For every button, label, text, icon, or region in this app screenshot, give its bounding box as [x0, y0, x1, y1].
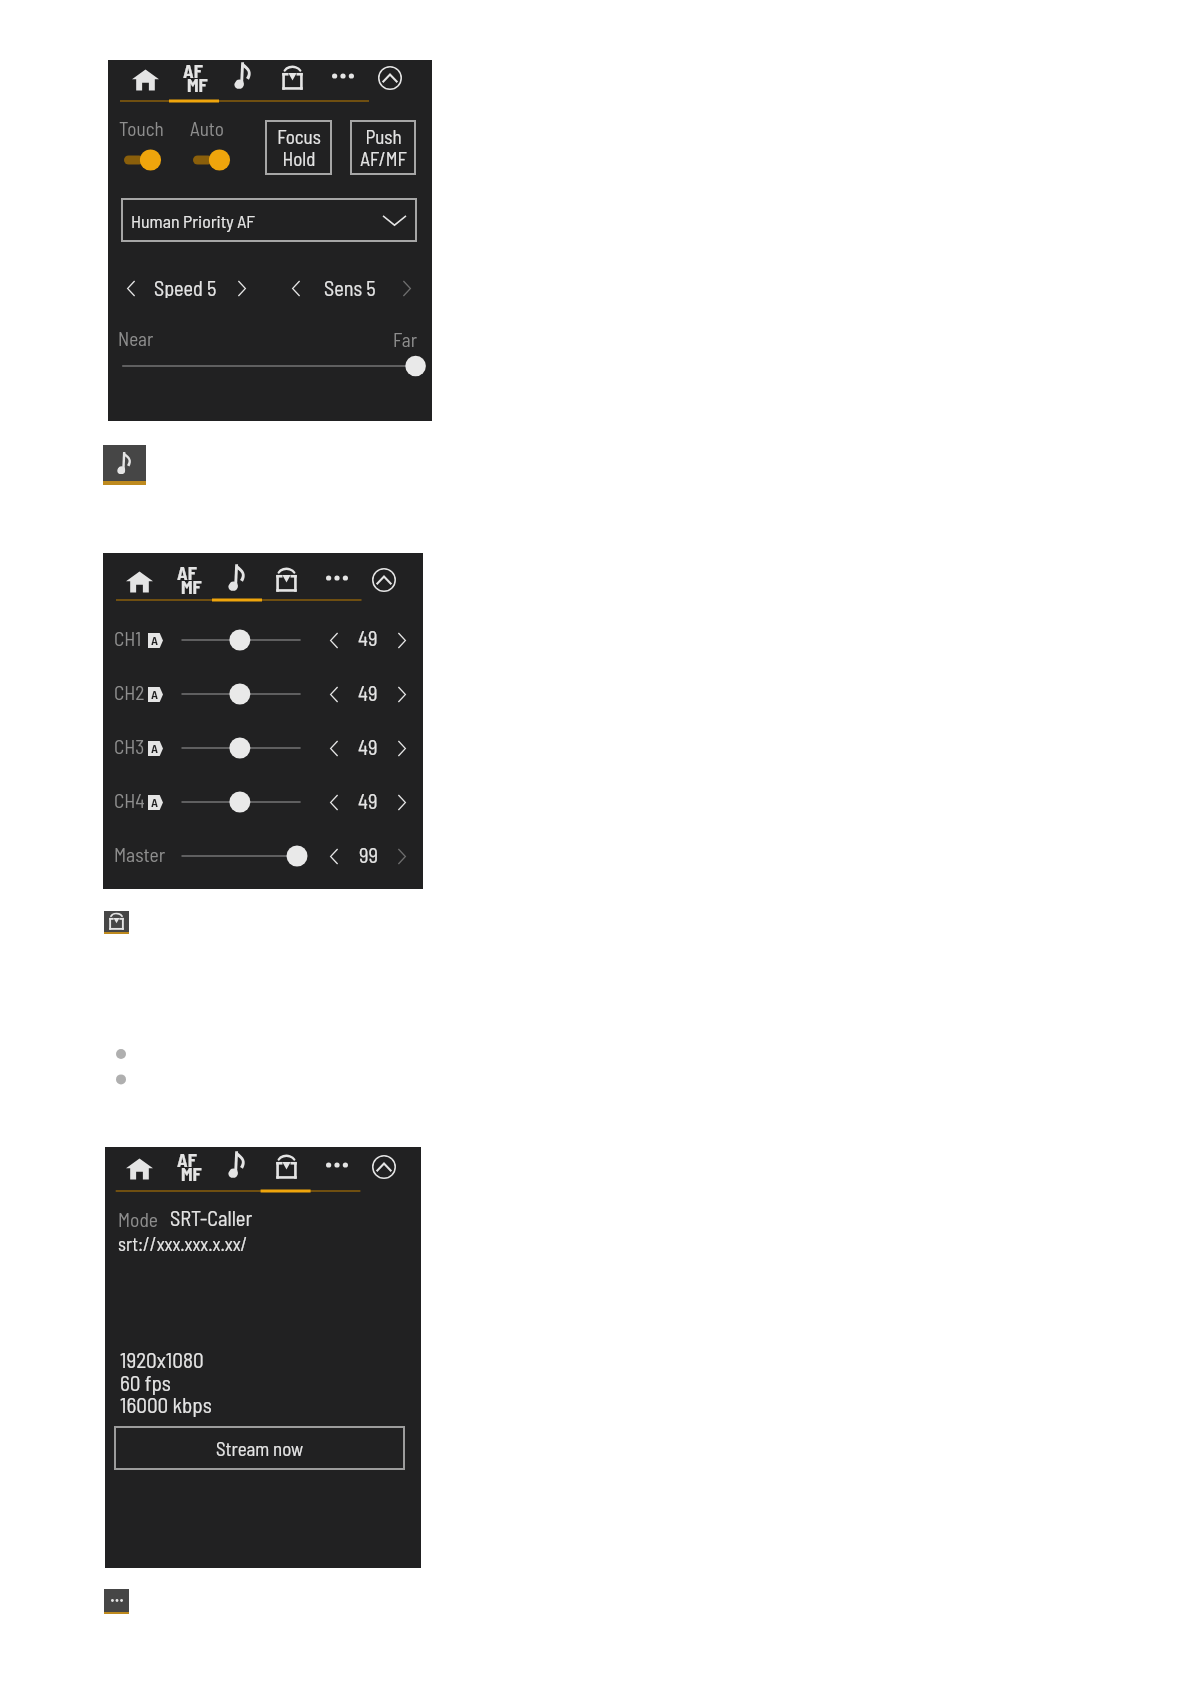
staticText: CH1 [114, 626, 142, 650]
button[interactable]: Audio [221, 58, 265, 92]
button[interactable]: Streaming [264, 1150, 308, 1184]
staticText: Touch [119, 117, 164, 140]
button[interactable]: Audio tab [103, 445, 146, 481]
button[interactable]: Collapse [362, 1150, 406, 1184]
staticText: Far [393, 328, 417, 351]
staticText: A [151, 687, 159, 702]
button[interactable]: More [315, 1148, 359, 1182]
staticText: srt://xxx.xxx.x.xx/ [118, 1232, 248, 1254]
staticText: MF [181, 1163, 202, 1185]
staticText: A [151, 795, 159, 810]
button[interactable]: Streaming [270, 61, 314, 95]
button[interactable]: Audio [215, 560, 259, 594]
button[interactable]: Streaming [264, 563, 308, 597]
staticText: A [151, 633, 159, 648]
staticText: Mode [118, 1207, 159, 1230]
button[interactable]: Human Priority AF [121, 198, 417, 242]
staticText: AF [177, 1149, 197, 1171]
staticText: SRT-Caller [170, 1205, 253, 1230]
staticText: Human Priority AF [131, 210, 255, 231]
button[interactable]: Audio [215, 1147, 259, 1181]
staticText: Auto [190, 117, 224, 140]
staticText: A [151, 741, 159, 756]
staticText: Speed 5 [154, 276, 217, 298]
staticText: Master [114, 842, 166, 866]
button[interactable]: Toggle on [193, 148, 231, 172]
staticText: CH3 [114, 734, 145, 758]
button[interactable]: Stream now [114, 1426, 405, 1470]
button[interactable]: Collapse [368, 61, 412, 95]
staticText: 49 [358, 734, 378, 756]
staticText: 16000 kbps [120, 1392, 212, 1417]
staticText: AF [177, 562, 197, 584]
staticText: 60 fps [120, 1370, 171, 1395]
staticText: Near [118, 327, 154, 350]
button[interactable] [120, 276, 253, 302]
button[interactable]: Home [117, 565, 161, 599]
button[interactable]: AF MF [166, 561, 210, 595]
staticText: CH2 [114, 680, 145, 704]
button[interactable]: AF MF [172, 59, 216, 93]
button[interactable]: Home [123, 63, 167, 97]
staticText: 99 [359, 842, 378, 864]
staticText: 49 [358, 625, 378, 647]
staticText: Stream now [216, 1437, 304, 1460]
button[interactable]: Toggle on [124, 148, 162, 172]
button[interactable] [285, 276, 418, 302]
button[interactable]: Home [117, 1152, 161, 1186]
staticText: 49 [358, 788, 378, 810]
button[interactable]: More [315, 561, 359, 595]
staticText: MF [181, 576, 202, 598]
button[interactable]: Collapse [362, 563, 406, 597]
staticText: Push AF/MF [360, 125, 407, 170]
button[interactable]: More tab [104, 1589, 129, 1612]
button[interactable]: Push AF/MF [350, 120, 416, 175]
staticText: Sens 5 [324, 276, 376, 298]
staticText: AF [183, 60, 203, 82]
button[interactable]: Streaming tab [104, 911, 129, 932]
staticText: MF [187, 74, 208, 96]
staticText: 1920x1080 [120, 1347, 204, 1372]
staticText: CH4 [114, 788, 145, 812]
button[interactable]: Focus Hold [265, 120, 332, 175]
button[interactable]: More [321, 59, 365, 93]
staticText: Focus Hold [277, 125, 321, 170]
button[interactable]: AF MF [166, 1148, 210, 1182]
staticText: 49 [358, 680, 378, 702]
